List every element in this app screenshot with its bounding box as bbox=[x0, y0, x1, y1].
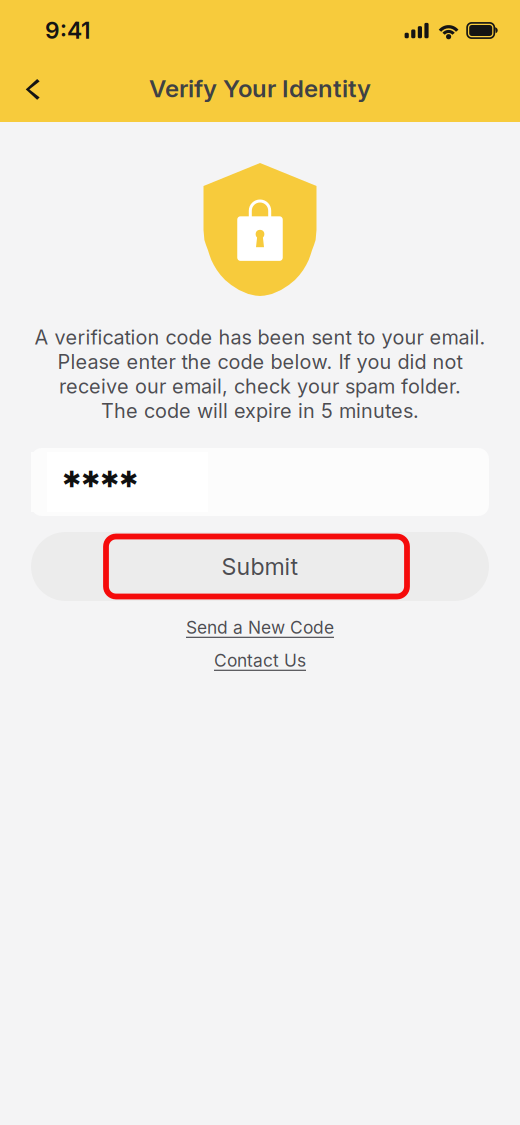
staticText: ✱✱✱✱ bbox=[62, 466, 138, 493]
button[interactable]: Contact Us bbox=[214, 646, 306, 675]
staticText: Submit bbox=[221, 552, 298, 581]
staticText: receive our email, check your spam folde… bbox=[59, 374, 461, 398]
staticText: Send a New Code bbox=[186, 617, 334, 638]
staticText: Verify Your Identity bbox=[149, 74, 371, 103]
staticText: A verification code has been sent to you… bbox=[34, 325, 485, 349]
staticText: 9:41 bbox=[45, 17, 91, 44]
staticText: Please enter the code below. If you did … bbox=[57, 350, 462, 374]
staticText: Contact Us bbox=[214, 650, 306, 671]
button[interactable]: Send a New Code bbox=[186, 613, 334, 642]
button[interactable]: Submit bbox=[31, 532, 489, 601]
button[interactable]: Back bbox=[9, 65, 57, 113]
staticText: The code will expire in 5 minutes. bbox=[101, 399, 419, 423]
